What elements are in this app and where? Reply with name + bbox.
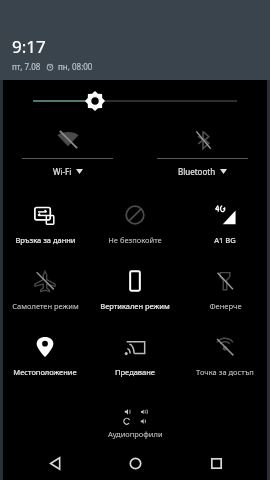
staticText: Самолетен режим bbox=[12, 301, 79, 311]
staticText: Фенерче bbox=[209, 301, 242, 311]
button[interactable]: Местоположение bbox=[0, 328, 90, 394]
button[interactable]: Recents bbox=[190, 446, 242, 480]
staticText: A1 BG bbox=[214, 235, 236, 245]
staticText: Bluetooth bbox=[178, 166, 216, 177]
staticText: Точка за достъп bbox=[196, 367, 254, 377]
staticText: Местоположение bbox=[13, 367, 77, 377]
staticText: Аудиопрофили bbox=[108, 429, 163, 439]
button[interactable]: Предаване bbox=[90, 328, 180, 394]
button[interactable]: Самолетен режим bbox=[0, 262, 90, 328]
button[interactable]: Връзка за данни bbox=[0, 196, 90, 262]
button[interactable]: Bluetooth bbox=[135, 122, 270, 190]
button[interactable]: Вертикален режим bbox=[90, 262, 180, 328]
button[interactable]: Home bbox=[109, 446, 161, 480]
button[interactable]: Точка за достъп bbox=[180, 328, 270, 394]
staticText: Връзка за данни bbox=[15, 235, 76, 245]
button[interactable]: Не безпокойте bbox=[90, 196, 180, 262]
button[interactable]: Wi-Fi bbox=[0, 122, 135, 190]
button[interactable]: Back bbox=[29, 446, 81, 480]
staticText: 9:17 bbox=[12, 35, 46, 58]
staticText: Wi-Fi bbox=[53, 166, 72, 177]
staticText: Предаване bbox=[115, 367, 155, 377]
staticText: пт, 7.08 bbox=[12, 61, 41, 72]
button[interactable]: Аудиопрофили bbox=[0, 400, 270, 446]
staticText: Не безпокойте bbox=[108, 235, 162, 245]
button[interactable]: Фенерче bbox=[180, 262, 270, 328]
button[interactable]: Brightness bbox=[0, 80, 270, 122]
button[interactable]: A1 BG bbox=[180, 196, 270, 262]
staticText: Вертикален режим bbox=[100, 301, 170, 311]
staticText: пн, 08:00 bbox=[58, 61, 93, 72]
